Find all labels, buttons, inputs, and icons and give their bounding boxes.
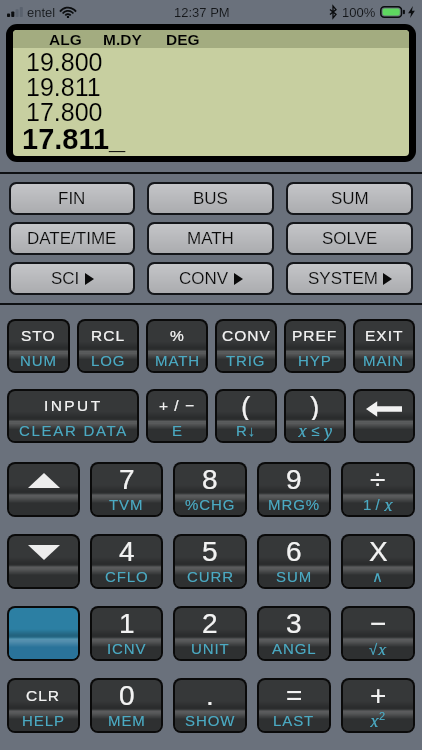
staticText: SOLVE	[322, 229, 378, 248]
staticText: +	[370, 680, 387, 710]
other: Scroll up	[7, 462, 80, 517]
button[interactable]: 3	[259, 608, 329, 659]
staticText: √	[369, 641, 378, 658]
button[interactable]: 5	[175, 536, 245, 587]
staticText: STO	[21, 327, 56, 344]
staticText: PREF	[292, 327, 338, 344]
staticText: SYSTEM	[308, 269, 378, 288]
button[interactable]: INPUT	[9, 391, 137, 441]
staticText: MAIN	[363, 352, 405, 369]
staticText: MATH	[155, 352, 200, 369]
button[interactable]: MATH	[149, 224, 272, 253]
staticText: SUM	[331, 189, 369, 208]
staticText: ≤	[307, 422, 324, 439]
button[interactable]: +	[343, 680, 413, 731]
staticText: 3	[286, 608, 302, 638]
button[interactable]: 6	[259, 536, 329, 587]
button[interactable]: 8	[175, 464, 245, 515]
button[interactable]: 4	[92, 536, 161, 587]
button[interactable]: SUM	[288, 184, 411, 213]
button[interactable]: 0	[92, 680, 161, 731]
staticText: HELP	[22, 712, 65, 729]
staticText: E	[172, 422, 183, 439]
button[interactable]: (	[217, 391, 275, 441]
button[interactable]: )	[286, 391, 344, 441]
button[interactable]: PREF	[286, 321, 344, 371]
button[interactable]: ÷	[343, 464, 413, 515]
button[interactable]: CONV	[217, 321, 275, 371]
staticText: R↓	[236, 422, 257, 439]
staticText: ANGL	[272, 640, 317, 657]
staticText: y	[324, 420, 333, 441]
button[interactable]: EXIT	[355, 321, 413, 371]
button[interactable]: + / −	[148, 391, 206, 441]
staticText: ÷	[370, 464, 386, 494]
button[interactable]: CONV	[149, 264, 272, 293]
staticText: 100%	[342, 5, 376, 20]
staticText: CONV	[179, 269, 229, 288]
staticText: X	[369, 536, 388, 566]
staticText: 2	[379, 710, 386, 722]
button[interactable]	[9, 536, 78, 587]
button[interactable]: RCL	[79, 321, 137, 371]
staticText: BUS	[193, 189, 228, 208]
staticText: 7	[119, 464, 135, 494]
staticText: )	[310, 391, 320, 420]
button[interactable]	[9, 608, 78, 659]
button[interactable]: STO	[9, 321, 68, 371]
button[interactable]: CLR	[9, 680, 78, 731]
staticText: FIN	[58, 189, 86, 208]
staticText: LOG	[91, 352, 126, 369]
button[interactable]: 2	[175, 608, 245, 659]
staticText: SUM	[276, 568, 313, 585]
staticText: TRIG	[226, 352, 266, 369]
staticText: 8	[202, 464, 218, 494]
button[interactable]: 9	[259, 464, 329, 515]
button[interactable]: X	[343, 536, 413, 587]
staticText: CLEAR DATA	[19, 422, 128, 439]
button[interactable]: =	[259, 680, 329, 731]
button[interactable]: SCI	[11, 264, 133, 293]
staticText: x	[370, 710, 379, 731]
staticText: .	[206, 680, 214, 710]
staticText: ICNV	[107, 640, 147, 657]
button[interactable]: FIN	[11, 184, 133, 213]
staticText: 17.811_	[22, 123, 126, 153]
staticText: SHOW	[185, 712, 236, 729]
staticText: INPUT	[44, 397, 103, 414]
button[interactable]: 1	[92, 608, 161, 659]
staticText: 9	[286, 464, 302, 494]
staticText: (	[241, 391, 251, 420]
other: Scroll down	[7, 534, 80, 589]
button[interactable]: .	[175, 680, 245, 731]
button[interactable]	[9, 464, 78, 515]
staticText: 4	[119, 536, 135, 566]
button[interactable]: SOLVE	[288, 224, 411, 253]
staticText: LAST	[273, 712, 315, 729]
button[interactable]: −	[343, 608, 413, 659]
staticText: x	[298, 420, 307, 441]
button[interactable]	[355, 391, 413, 441]
staticText: 5	[202, 536, 218, 566]
staticText: %	[170, 327, 185, 344]
button[interactable]: BUS	[149, 184, 272, 213]
staticText: −	[370, 608, 387, 638]
button[interactable]: 7	[92, 464, 161, 515]
button[interactable]: DATE/TIME	[11, 224, 133, 253]
staticText: x	[384, 494, 393, 515]
staticText: 19.811	[26, 73, 101, 98]
staticText: SCI	[51, 269, 80, 288]
staticText: DATE/TIME	[27, 229, 117, 248]
staticText: CFLO	[105, 568, 149, 585]
staticText: ∧	[372, 568, 384, 585]
staticText: 1 /	[363, 496, 384, 513]
button[interactable]: SYSTEM	[288, 264, 411, 293]
staticText: x	[378, 639, 387, 659]
staticText: 2	[202, 608, 218, 638]
staticText: RCL	[91, 327, 126, 344]
staticText: MATH	[187, 229, 234, 248]
button[interactable]: %	[148, 321, 206, 371]
other: Backspace	[353, 389, 415, 443]
staticText: %CHG	[185, 496, 236, 513]
staticText: CONV	[222, 327, 271, 344]
